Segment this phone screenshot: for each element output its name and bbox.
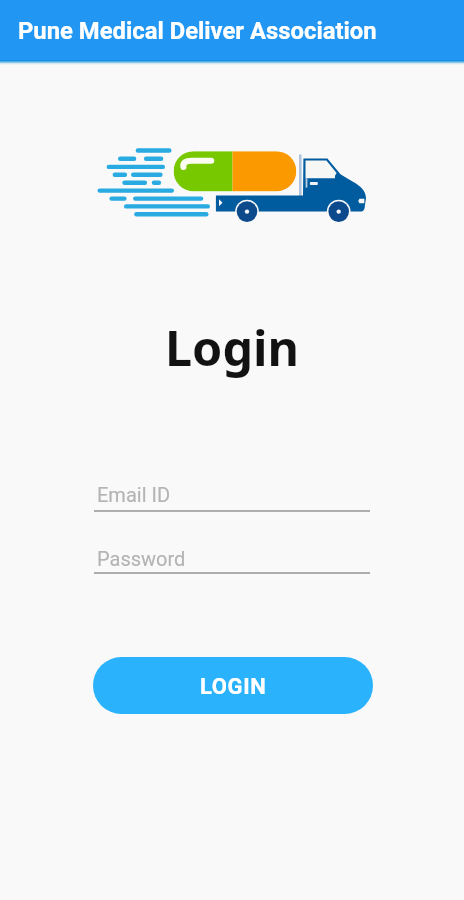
staticText: Pune Medical Deliver Association [18, 17, 377, 45]
button[interactable]: LOGIN [93, 657, 373, 714]
button[interactable]: Email ID [94, 483, 370, 517]
button[interactable]: Pune Medical Deliver Association [0, 0, 464, 60]
staticText: Password [97, 547, 186, 571]
staticText: LOGIN [200, 673, 267, 699]
staticText: Login [165, 316, 300, 379]
staticText: Email ID [97, 483, 171, 507]
button[interactable]: Password [94, 547, 370, 581]
